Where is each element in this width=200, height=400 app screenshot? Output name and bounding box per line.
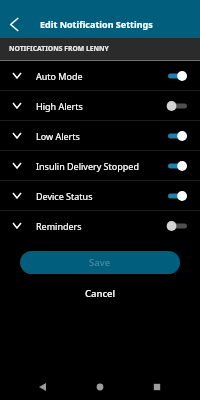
- button[interactable]: Cancel: [0, 284, 200, 302]
- button[interactable]: High Alerts: [0, 91, 200, 120]
- button[interactable]: Reminders: [0, 211, 200, 240]
- button[interactable]: Low Alerts: [0, 121, 200, 150]
- staticText: Insulin Delivery Stopped: [36, 160, 139, 172]
- button[interactable]: Toggle Auto Mode: [168, 70, 187, 82]
- button[interactable]: Toggle High Alerts: [168, 100, 187, 112]
- staticText: Cancel: [85, 287, 116, 300]
- staticText: Edit Notification Settings: [40, 18, 153, 30]
- staticText: NOTIFICATIONS FROM LENNY: [9, 44, 109, 53]
- staticText: Reminders: [36, 220, 82, 232]
- button[interactable]: Recent apps: [128, 374, 185, 400]
- button[interactable]: Back: [14, 374, 71, 400]
- button[interactable]: Back: [0, 10, 28, 38]
- staticText: Device Status: [36, 190, 93, 202]
- button[interactable]: Toggle Insulin Delivery Stopped: [168, 160, 187, 172]
- staticText: Auto Mode: [36, 70, 83, 82]
- button[interactable]: Toggle Reminders: [168, 220, 187, 232]
- button[interactable]: Auto Mode: [0, 61, 200, 90]
- button[interactable]: Device Status: [0, 181, 200, 210]
- staticText: High Alerts: [36, 100, 83, 112]
- button[interactable]: Save: [20, 251, 180, 274]
- button[interactable]: Home: [71, 374, 128, 400]
- button[interactable]: Toggle Device Status: [168, 190, 187, 202]
- button[interactable]: Toggle Low Alerts: [168, 130, 187, 142]
- staticText: Low Alerts: [36, 130, 80, 142]
- button[interactable]: Insulin Delivery Stopped: [0, 151, 200, 180]
- staticText: Save: [89, 256, 111, 269]
